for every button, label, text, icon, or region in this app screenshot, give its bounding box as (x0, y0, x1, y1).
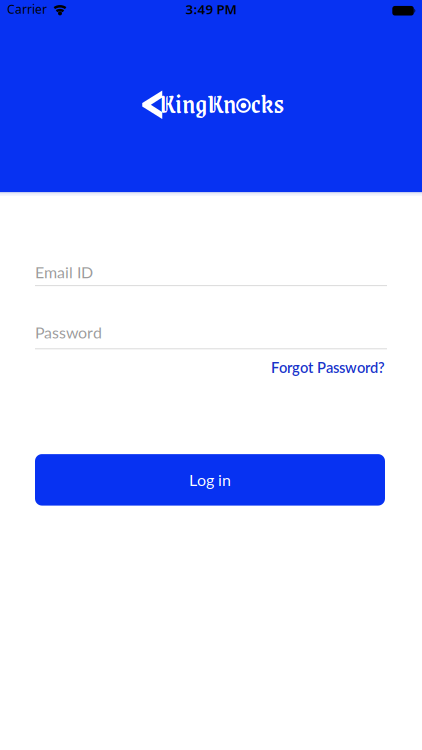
staticText: Forgot Password? (271, 359, 385, 376)
button[interactable]: Password (35, 323, 387, 349)
staticText: Carrier (7, 1, 47, 17)
button[interactable]: Forgot Password? (271, 359, 385, 376)
staticText: Password (35, 323, 102, 342)
staticText: Log in (189, 470, 231, 489)
staticText: KingKn (159, 83, 236, 123)
staticText: Email ID (35, 262, 93, 282)
button[interactable]: Log in (35, 454, 385, 506)
staticText: 3:49 PM (185, 0, 236, 18)
button[interactable]: Email ID (35, 262, 387, 286)
staticText: cks (251, 83, 284, 123)
